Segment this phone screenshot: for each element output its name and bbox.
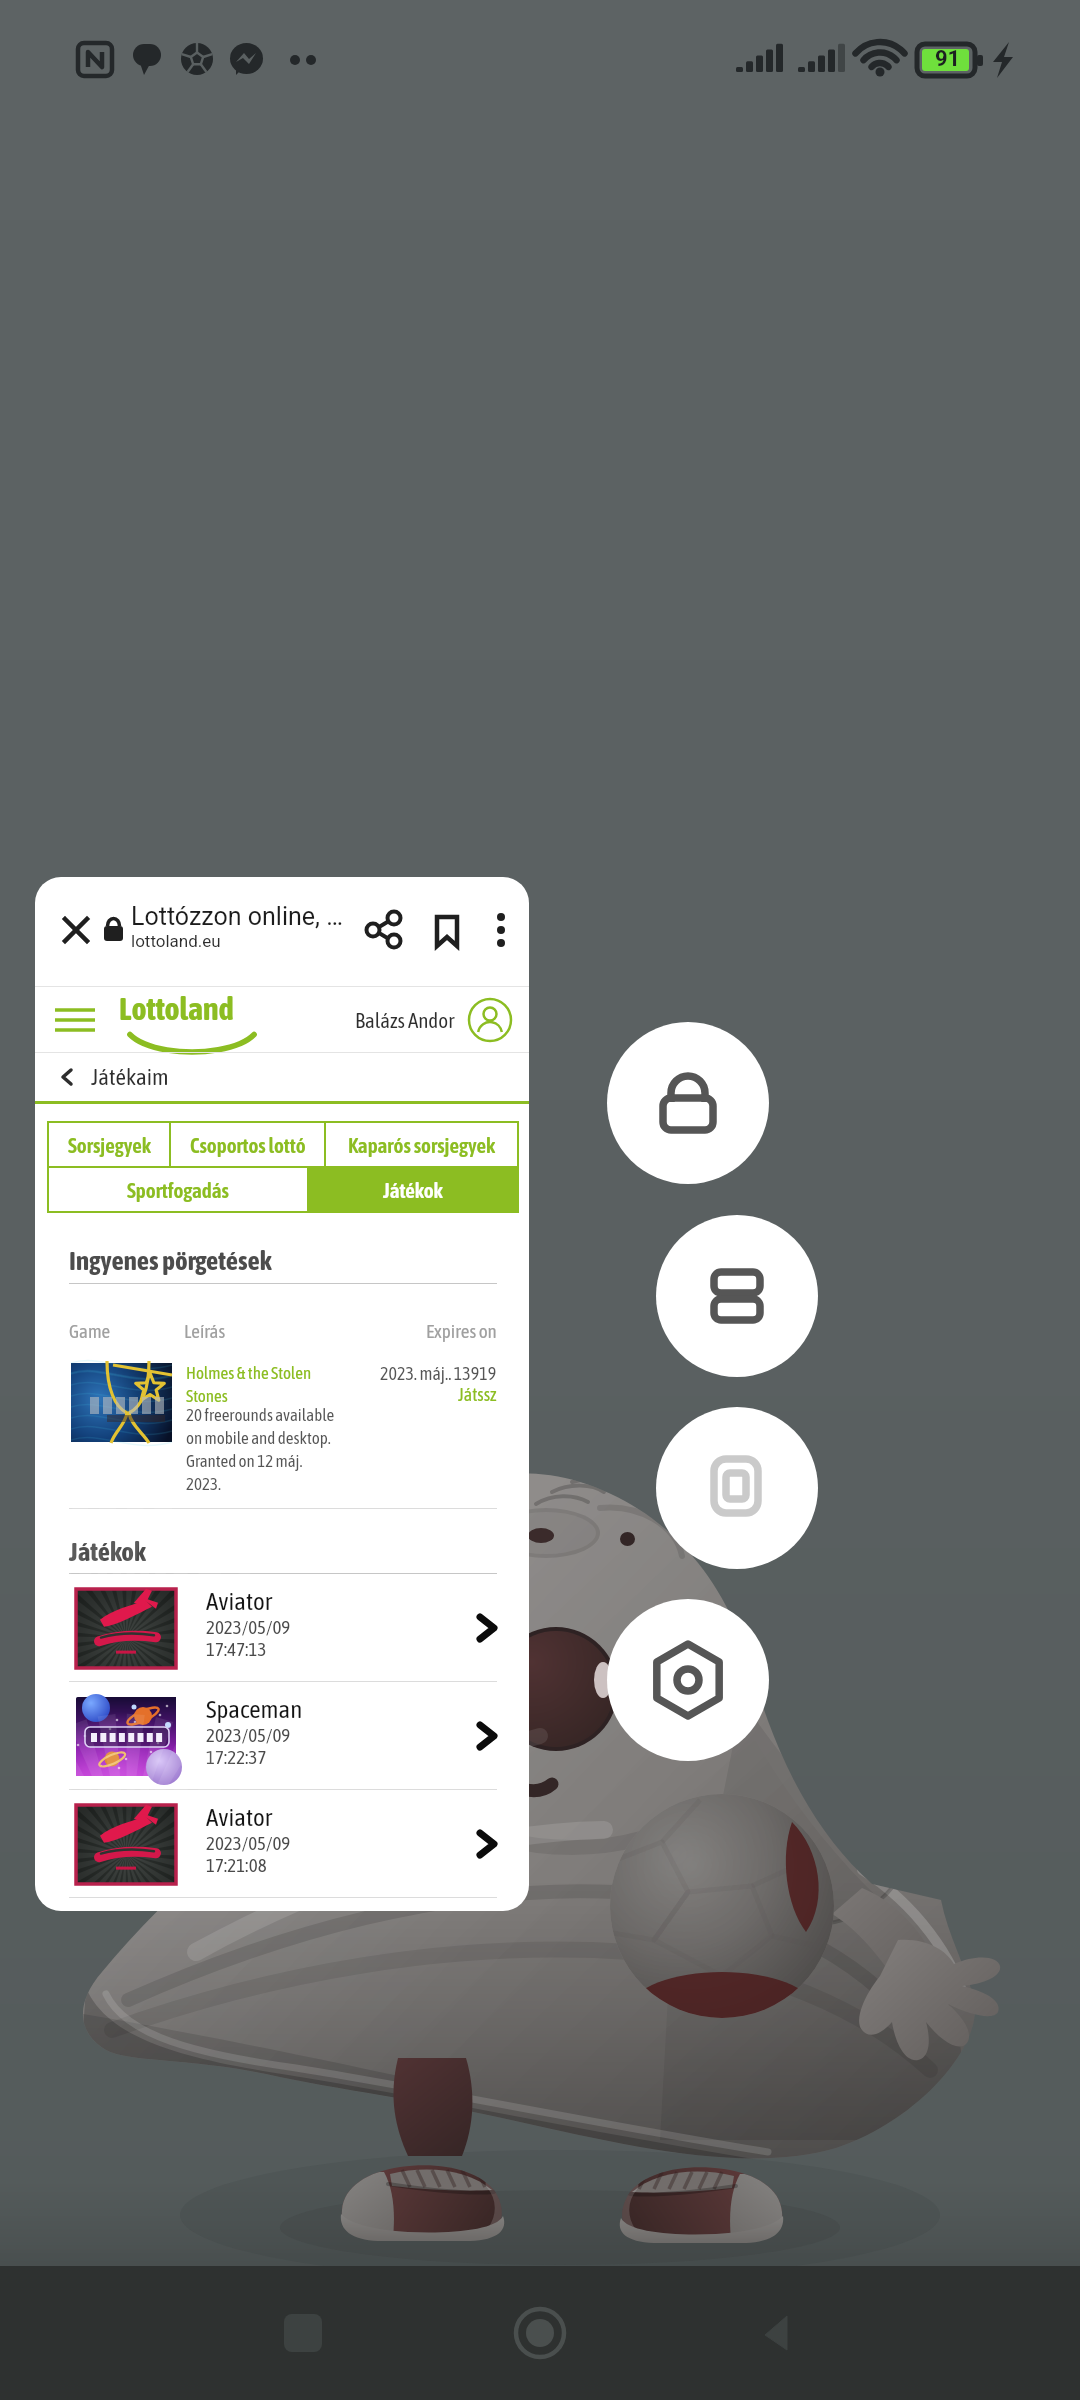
button[interactable]: Spaceman bbox=[35, 1682, 529, 1790]
staticText: 2023/05/09 bbox=[206, 1616, 291, 1638]
staticText: lottoland.eu bbox=[131, 931, 221, 951]
staticText: Lottózzon online, … bbox=[131, 902, 343, 931]
staticText: Leírás bbox=[184, 1320, 426, 1342]
staticText: Játékok bbox=[383, 1178, 443, 1202]
button[interactable]: Játékaim bbox=[55, 1053, 509, 1101]
button[interactable]: Split screen bbox=[656, 1215, 818, 1377]
staticText: Balázs Andor bbox=[355, 1008, 455, 1032]
button[interactable]: Picture in picture bbox=[656, 1407, 818, 1569]
button[interactable]: Recents bbox=[238, 2268, 368, 2398]
staticText: Sportfogadás bbox=[127, 1178, 229, 1202]
staticText: Ingyenes pörgetések bbox=[69, 1245, 272, 1276]
staticText: Game bbox=[69, 1320, 184, 1342]
staticText: 17:22:37 bbox=[206, 1746, 267, 1768]
button[interactable]: Bookmark bbox=[423, 907, 471, 955]
button[interactable]: App info bbox=[607, 1599, 769, 1761]
staticText: 2023. máj.. 13919 bbox=[380, 1363, 497, 1384]
button[interactable]: Close bbox=[51, 905, 101, 955]
staticText: 2023/05/09 bbox=[206, 1724, 291, 1746]
staticText: Játssz bbox=[458, 1384, 497, 1405]
staticText: 20 freerounds available on mobile and de… bbox=[186, 1405, 338, 1493]
button[interactable]: Aviator bbox=[35, 1790, 529, 1898]
staticText: 91 bbox=[935, 46, 961, 72]
staticText: Holmes & the Stolen Stones bbox=[186, 1363, 338, 1405]
button[interactable]: Csoportos lottó bbox=[170, 1122, 325, 1167]
staticText: Sorsjegyek bbox=[68, 1133, 151, 1157]
button[interactable]: Account bbox=[467, 997, 513, 1043]
button[interactable]: Home bbox=[475, 2268, 605, 2398]
staticText: 2023/05/09 bbox=[206, 1832, 291, 1854]
button[interactable]: Aviator bbox=[35, 1574, 529, 1682]
staticText: Játékaim bbox=[91, 1064, 169, 1090]
staticText: Csoportos lottó bbox=[190, 1133, 306, 1157]
button[interactable]: Share bbox=[361, 907, 409, 955]
staticText: 17:47:13 bbox=[206, 1638, 267, 1660]
button[interactable]: Lock app bbox=[607, 1022, 769, 1184]
staticText: Aviator bbox=[206, 1803, 273, 1832]
staticText: Aviator bbox=[206, 1587, 273, 1616]
button[interactable]: Menu bbox=[53, 998, 97, 1042]
button[interactable]: Játékok bbox=[308, 1167, 518, 1212]
staticText: Expires on bbox=[426, 1320, 497, 1342]
staticText: Spaceman bbox=[206, 1695, 303, 1724]
staticText: Játékok bbox=[69, 1536, 146, 1567]
staticText: Lottoland bbox=[119, 990, 234, 1027]
button[interactable]: Kaparós sorsjegyek bbox=[325, 1122, 518, 1167]
button[interactable]: More options bbox=[479, 907, 523, 951]
button[interactable]: Sorsjegyek bbox=[48, 1122, 170, 1167]
staticText: Kaparós sorsjegyek bbox=[348, 1133, 496, 1157]
staticText: 17:21:08 bbox=[206, 1854, 267, 1876]
button[interactable]: Sportfogadás bbox=[48, 1167, 308, 1212]
